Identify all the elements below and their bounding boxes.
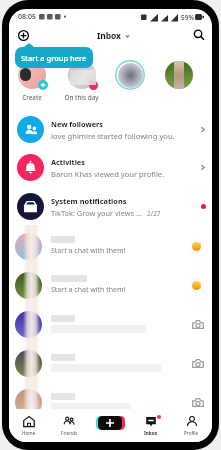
button[interactable]: Start a chat with them! <box>9 266 212 304</box>
staticText: Inbox <box>144 430 158 436</box>
staticText: love ghimire started following you. <box>51 131 175 141</box>
staticText: 2/27 <box>147 209 161 218</box>
button[interactable] <box>157 60 201 104</box>
button[interactable]: Profile <box>171 409 212 442</box>
staticText: 08:05 <box>18 12 36 22</box>
staticText: New followers <box>51 119 103 129</box>
button[interactable] <box>108 60 152 104</box>
staticText: On this day <box>64 93 99 102</box>
button[interactable]: Search <box>190 26 207 43</box>
staticText: Start a group here <box>21 53 87 63</box>
staticText: Create <box>22 93 42 102</box>
staticText: System notifications <box>51 196 127 206</box>
button[interactable]: Start a chat with them! <box>9 227 212 265</box>
button[interactable]: Inbox <box>130 409 171 442</box>
staticText: Home <box>22 430 36 436</box>
staticText: Start a chat with them! <box>51 285 126 295</box>
button[interactable]: Create <box>98 416 122 430</box>
staticText: 59% <box>181 13 194 22</box>
button[interactable]: On this day <box>59 60 103 104</box>
button[interactable]: System notifications <box>9 188 212 225</box>
button[interactable]: New followers <box>9 111 212 148</box>
button[interactable]: New message <box>15 27 31 43</box>
button[interactable] <box>9 383 212 421</box>
button[interactable]: Activities <box>9 149 212 186</box>
staticText: Activities <box>51 157 85 167</box>
staticText: Barun Khas viewed your profile. <box>51 169 165 179</box>
button[interactable] <box>9 344 212 382</box>
staticText: TikTok: Grow your views ... <box>51 208 142 218</box>
staticText: Friends <box>61 430 78 436</box>
button[interactable]: Inbox <box>97 30 130 42</box>
staticText: Start a chat with them! <box>51 246 126 256</box>
button[interactable]: Create <box>10 60 54 104</box>
button[interactable]: Friends <box>49 409 89 442</box>
staticText: Profile <box>184 430 199 436</box>
button[interactable]: Start a group here <box>15 47 93 68</box>
button[interactable] <box>9 305 212 343</box>
staticText: Inbox <box>97 30 121 42</box>
button[interactable]: Home <box>9 409 49 442</box>
